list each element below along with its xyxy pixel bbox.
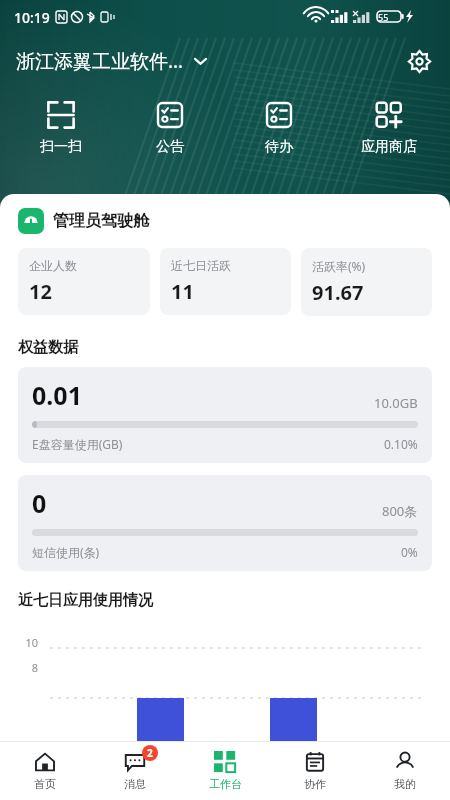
staticText: 近七日活跃 <box>171 258 231 273</box>
button[interactable]: 公告 <box>115 96 224 160</box>
button[interactable]: Settings <box>402 44 436 78</box>
button[interactable]: 近七日活跃 <box>160 248 291 315</box>
button[interactable]: 企业人数 <box>18 248 150 315</box>
button[interactable]: 协作 <box>270 742 360 800</box>
button[interactable]: 工作台 <box>180 742 270 800</box>
button[interactable]: 应用商店 <box>334 96 444 160</box>
staticText: 首页 <box>34 777 56 791</box>
staticText: 0 <box>32 486 47 520</box>
staticText: 2 <box>147 746 153 760</box>
staticText: 管理员驾驶舱 <box>53 211 149 231</box>
staticText: 55 <box>378 11 389 23</box>
staticText: 待办 <box>265 138 293 156</box>
button[interactable]: 0.01 <box>18 367 432 463</box>
staticText: 协作 <box>304 777 326 791</box>
staticText: E盘容量使用(GB) <box>32 436 123 452</box>
button[interactable]: 首页 <box>0 742 90 800</box>
staticText: 10:19 <box>14 8 50 27</box>
staticText: 91.67 <box>312 279 364 306</box>
button[interactable]: 活跃率(%) <box>301 248 432 316</box>
staticText: 权益数据 <box>18 338 78 357</box>
staticText: 近七日应用使用情况 <box>18 591 153 610</box>
button[interactable]: 0 <box>18 475 432 571</box>
button[interactable]: 管理员驾驶舱 <box>18 208 432 234</box>
button[interactable]: 浙江添翼工业软件… <box>16 48 209 74</box>
staticText: 扫一扫 <box>40 138 82 156</box>
staticText: 活跃率(%) <box>312 258 366 274</box>
staticText: 企业人数 <box>29 258 77 273</box>
staticText: 0.01 <box>32 378 82 412</box>
button[interactable]: 我的 <box>360 742 450 800</box>
button[interactable]: 待办 <box>224 96 334 160</box>
staticText: 0.10% <box>384 436 418 452</box>
staticText: 12 <box>29 278 52 305</box>
staticText: 应用商店 <box>361 138 417 156</box>
staticText: 浙江添翼工业软件… <box>16 48 184 74</box>
staticText: 11 <box>171 278 194 305</box>
staticText: 短信使用(条) <box>32 544 100 560</box>
staticText: 8 <box>0 660 38 675</box>
staticText: 工作台 <box>209 777 242 791</box>
staticText: 公告 <box>156 138 184 156</box>
staticText: 800条 <box>382 502 418 520</box>
staticText: 消息 <box>124 777 146 791</box>
staticText: 10 <box>0 635 38 650</box>
button[interactable]: 扫一扫 <box>6 96 115 160</box>
staticText: 我的 <box>394 777 416 791</box>
staticText: 0% <box>401 544 418 560</box>
button[interactable]: 2 <box>90 742 180 800</box>
staticText: 10.0GB <box>374 394 418 412</box>
